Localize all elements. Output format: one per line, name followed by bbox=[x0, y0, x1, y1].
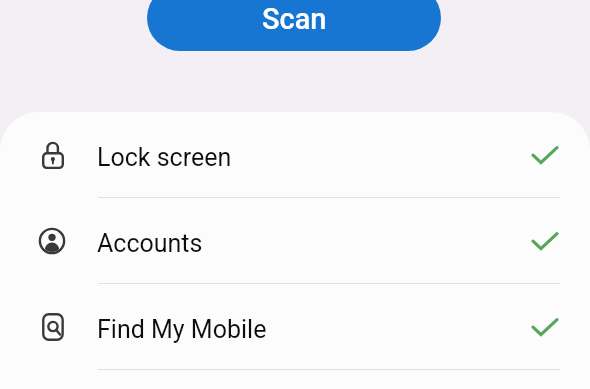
button[interactable]: Lock screen bbox=[0, 112, 590, 198]
staticText: Find My Mobile bbox=[97, 315, 267, 344]
staticText: Accounts bbox=[97, 229, 203, 258]
other: Accounts secured bbox=[530, 226, 560, 256]
other: Lock screen secured bbox=[530, 140, 560, 170]
button[interactable]: Find My Mobile bbox=[0, 284, 590, 370]
staticText: Scan bbox=[262, 2, 327, 36]
other: Find My Mobile secured bbox=[530, 312, 560, 342]
button[interactable]: Scan bbox=[147, 0, 441, 51]
staticText: Lock screen bbox=[97, 143, 232, 172]
button[interactable]: Accounts bbox=[0, 198, 590, 284]
